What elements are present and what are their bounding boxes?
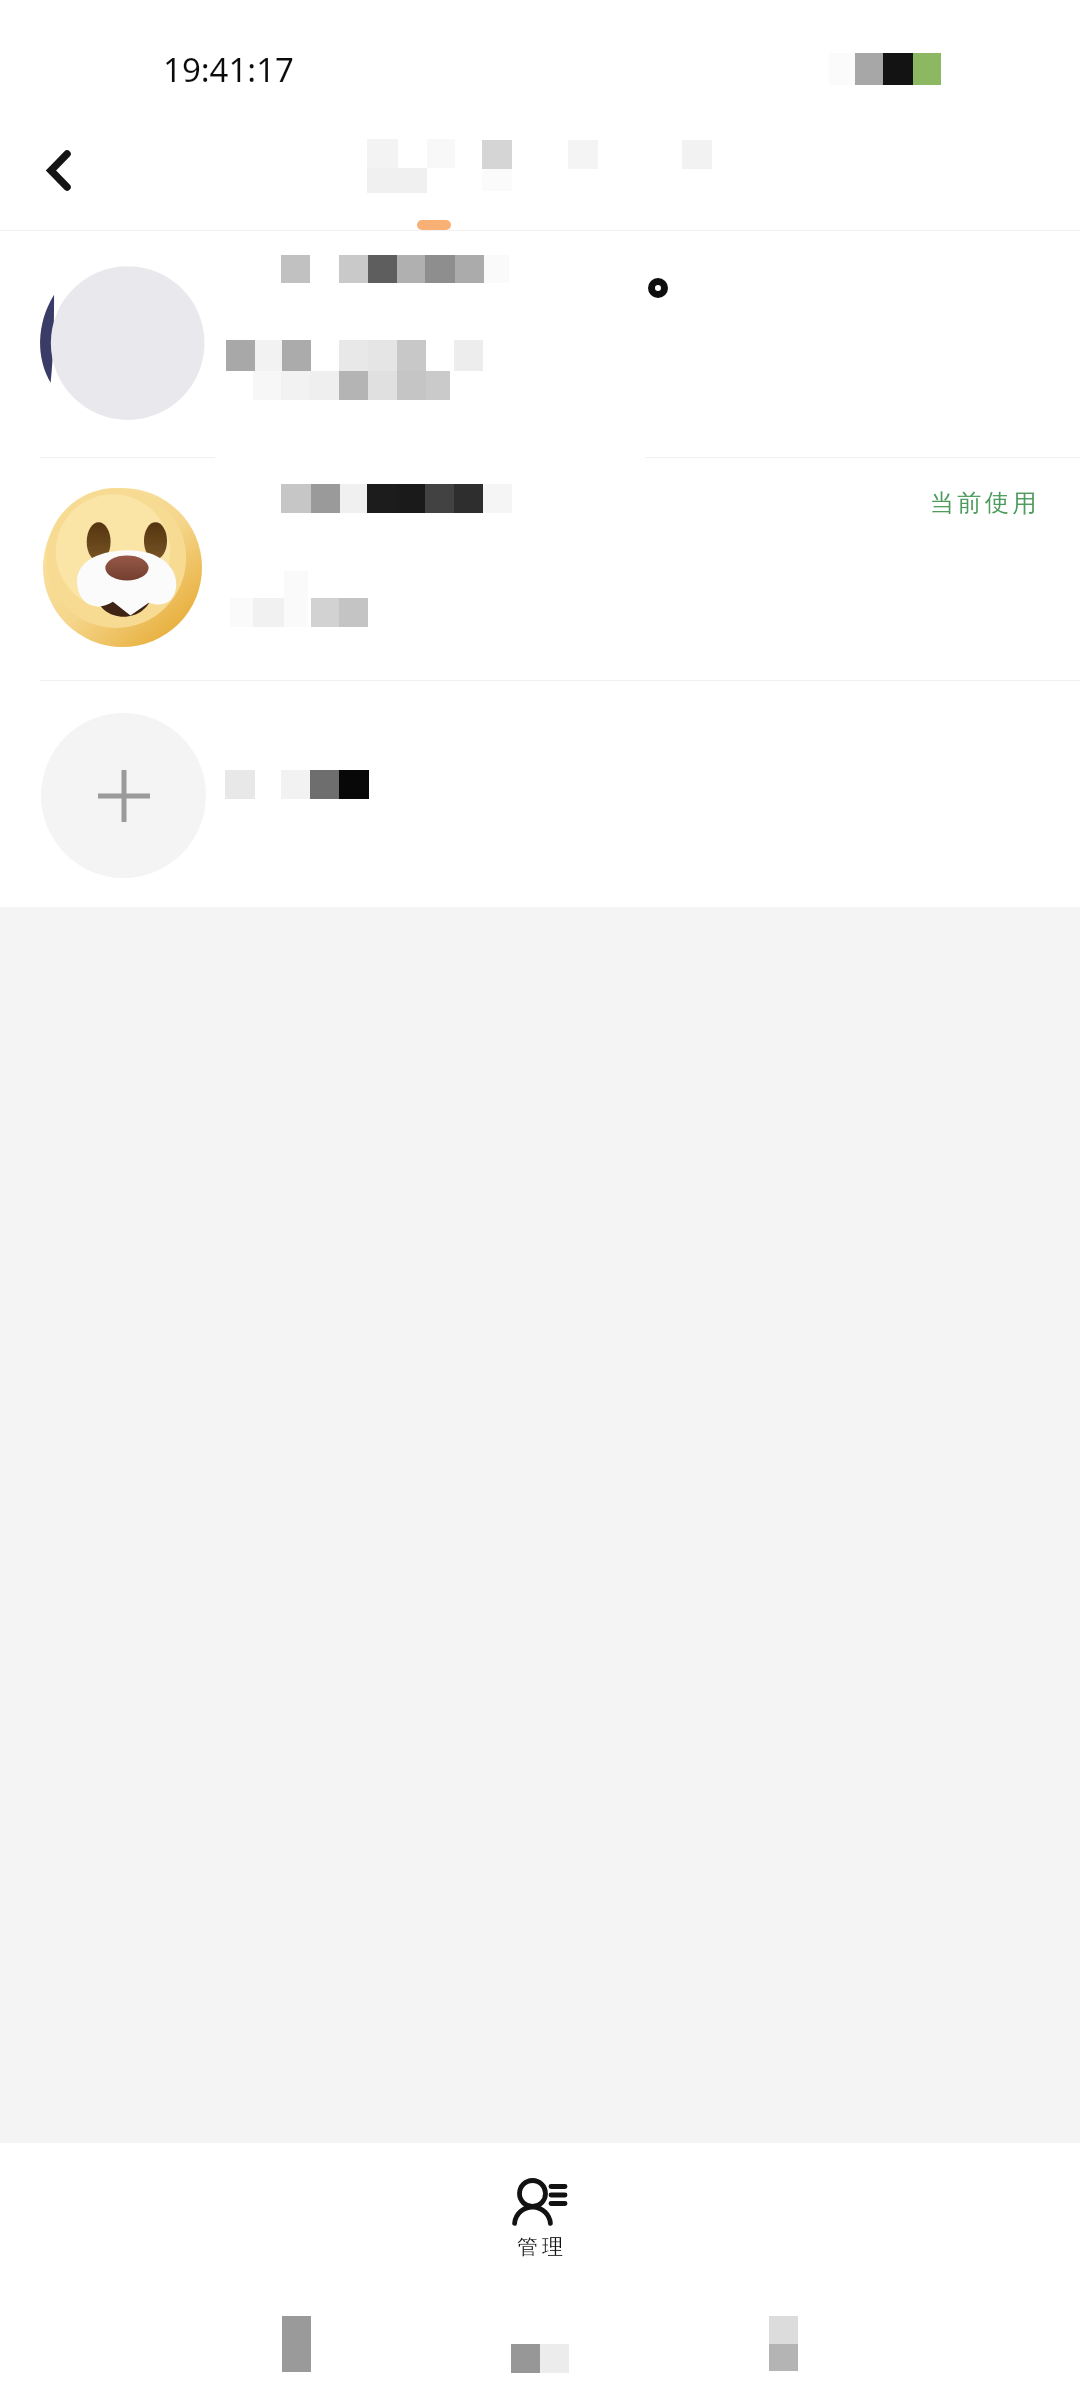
staticText: 19:41:17 <box>163 47 294 92</box>
staticText: 管理 <box>515 2234 565 2260</box>
staticText: 当前使用 <box>928 488 1038 518</box>
button[interactable]: Add account <box>0 681 1080 907</box>
button[interactable]: 管理 <box>513 2178 567 2260</box>
button[interactable] <box>0 231 1080 457</box>
button[interactable]: 当前使用 <box>0 458 1080 680</box>
button[interactable]: Back <box>0 110 118 231</box>
